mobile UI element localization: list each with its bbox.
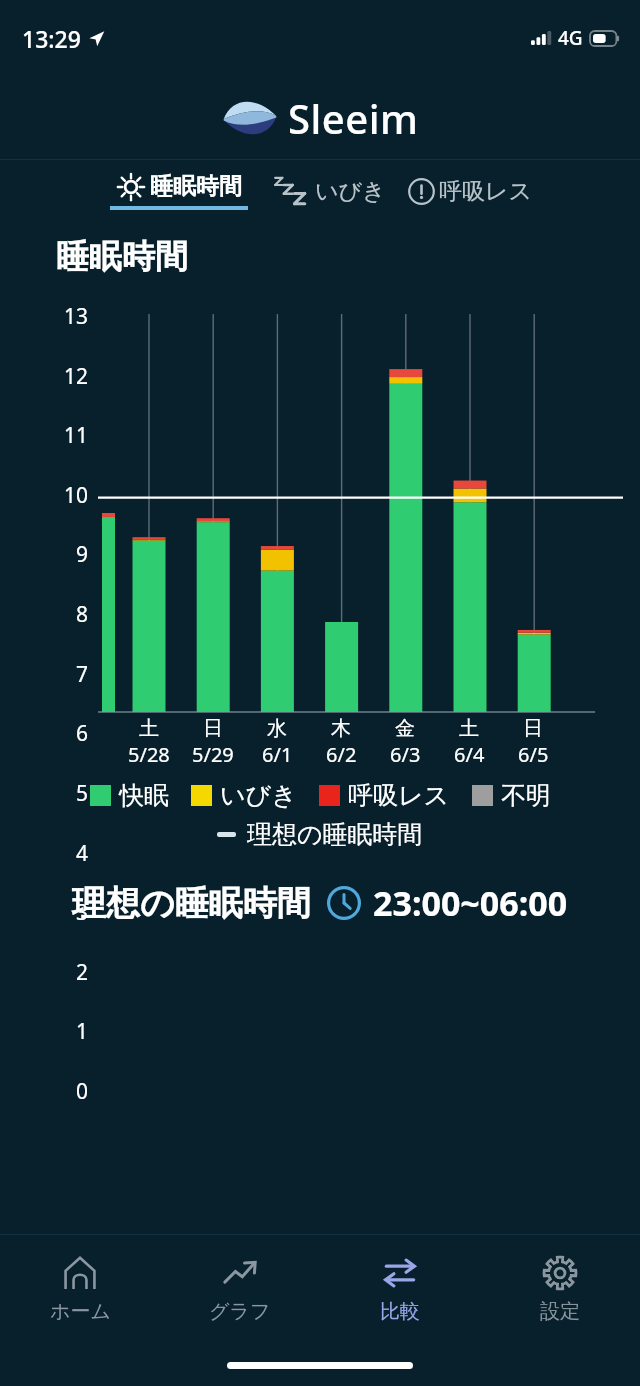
button[interactable]: 呼吸レス — [404, 171, 537, 212]
button[interactable]: ホーム — [0, 1234, 160, 1344]
staticText: Sleeim — [288, 91, 419, 145]
staticText: 設定 — [540, 1299, 580, 1324]
staticText: いびき — [315, 177, 386, 206]
staticText: 13:29 — [22, 23, 81, 54]
staticText: 12 — [56, 362, 88, 391]
staticText: 呼吸レス — [439, 177, 533, 206]
staticText: 5/29 — [192, 741, 234, 768]
staticText: 比較 — [380, 1299, 420, 1324]
staticText: ホーム — [50, 1299, 111, 1324]
staticText: グラフ — [209, 1299, 271, 1324]
staticText: 4G — [558, 25, 583, 51]
staticText: 1 — [56, 1017, 88, 1046]
staticText: 睡眠時間 — [56, 236, 188, 278]
staticText: 6/5 — [518, 741, 549, 768]
staticText: 2 — [56, 958, 88, 987]
staticText: 5 — [56, 779, 88, 808]
button[interactable]: グラフ — [160, 1234, 320, 1344]
staticText: 日 — [203, 716, 223, 741]
staticText: 呼吸レス — [348, 780, 450, 811]
staticText: 6/1 — [262, 741, 293, 768]
staticText: 木 — [331, 716, 351, 741]
staticText: いびき — [220, 780, 297, 811]
staticText: 6 — [56, 719, 88, 748]
staticText: 9 — [56, 540, 88, 569]
staticText: 睡眠時間 — [150, 172, 242, 201]
staticText: 理想の睡眠時間 — [72, 882, 311, 925]
staticText: 金 — [395, 716, 415, 741]
staticText: 理想の睡眠時間 — [247, 819, 423, 850]
staticText: 6/4 — [454, 741, 485, 768]
staticText: 11 — [56, 421, 88, 450]
staticText: 水 — [267, 716, 287, 741]
button[interactable]: 睡眠時間 — [104, 172, 254, 210]
staticText: 土 — [139, 716, 159, 741]
staticText: 6/2 — [326, 741, 357, 768]
staticText: 3 — [56, 898, 88, 927]
staticText: 7 — [56, 660, 88, 689]
staticText: 0 — [56, 1077, 88, 1106]
staticText: 4 — [56, 839, 88, 868]
button[interactable]: 比較 — [320, 1234, 480, 1344]
staticText: 日 — [523, 716, 543, 741]
staticText: 不明 — [501, 780, 551, 811]
staticText: 10 — [56, 481, 88, 510]
staticText: 8 — [56, 600, 88, 629]
staticText: 13 — [56, 302, 88, 331]
button[interactable]: いびき — [270, 170, 390, 212]
staticText: 土 — [459, 716, 479, 741]
button[interactable]: 設定 — [480, 1234, 640, 1344]
staticText: 快眠 — [119, 780, 169, 811]
staticText: 6/3 — [390, 741, 421, 768]
staticText: 23:00~06:00 — [373, 880, 568, 926]
staticText: 5/28 — [128, 741, 170, 768]
